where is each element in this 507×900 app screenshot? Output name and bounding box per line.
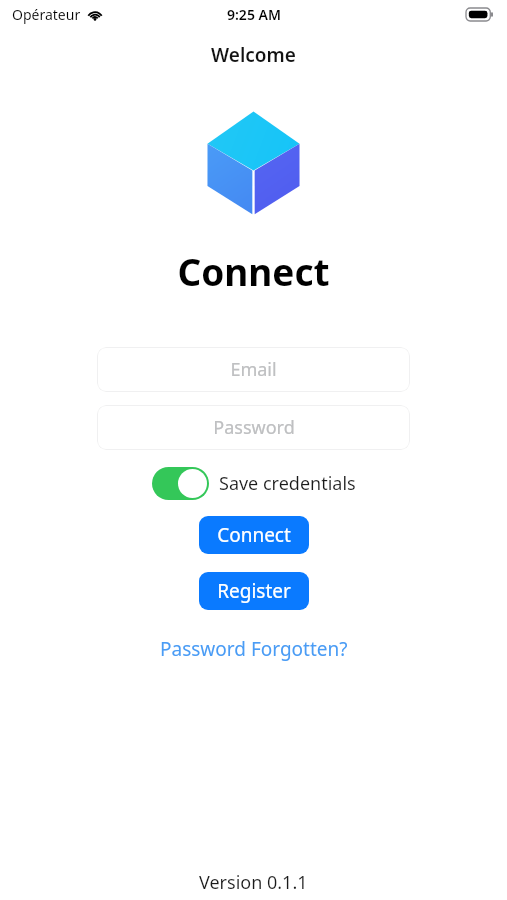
staticText: Email bbox=[230, 357, 277, 382]
button[interactable]: Password Forgotten? bbox=[152, 632, 356, 666]
staticText: Save credentials bbox=[219, 471, 356, 496]
staticText: Welcome bbox=[211, 42, 296, 68]
staticText: Password bbox=[213, 415, 295, 440]
button[interactable]: Email bbox=[97, 347, 410, 392]
staticText: Password Forgotten? bbox=[160, 636, 348, 662]
button[interactable]: Password bbox=[97, 405, 410, 450]
staticText: Connect bbox=[217, 522, 291, 548]
button[interactable]: Register bbox=[199, 572, 309, 610]
staticText: Connect bbox=[177, 246, 330, 296]
staticText: Register bbox=[217, 578, 291, 604]
staticText: Version 0.1.1 bbox=[199, 870, 308, 895]
button[interactable]: Save credentials toggle bbox=[152, 467, 209, 500]
button[interactable]: Save credentials toggle bbox=[150, 465, 358, 502]
staticText: Opérateur bbox=[12, 5, 81, 24]
staticText: 9:25 AM bbox=[227, 5, 281, 24]
button[interactable]: Connect bbox=[199, 516, 309, 554]
